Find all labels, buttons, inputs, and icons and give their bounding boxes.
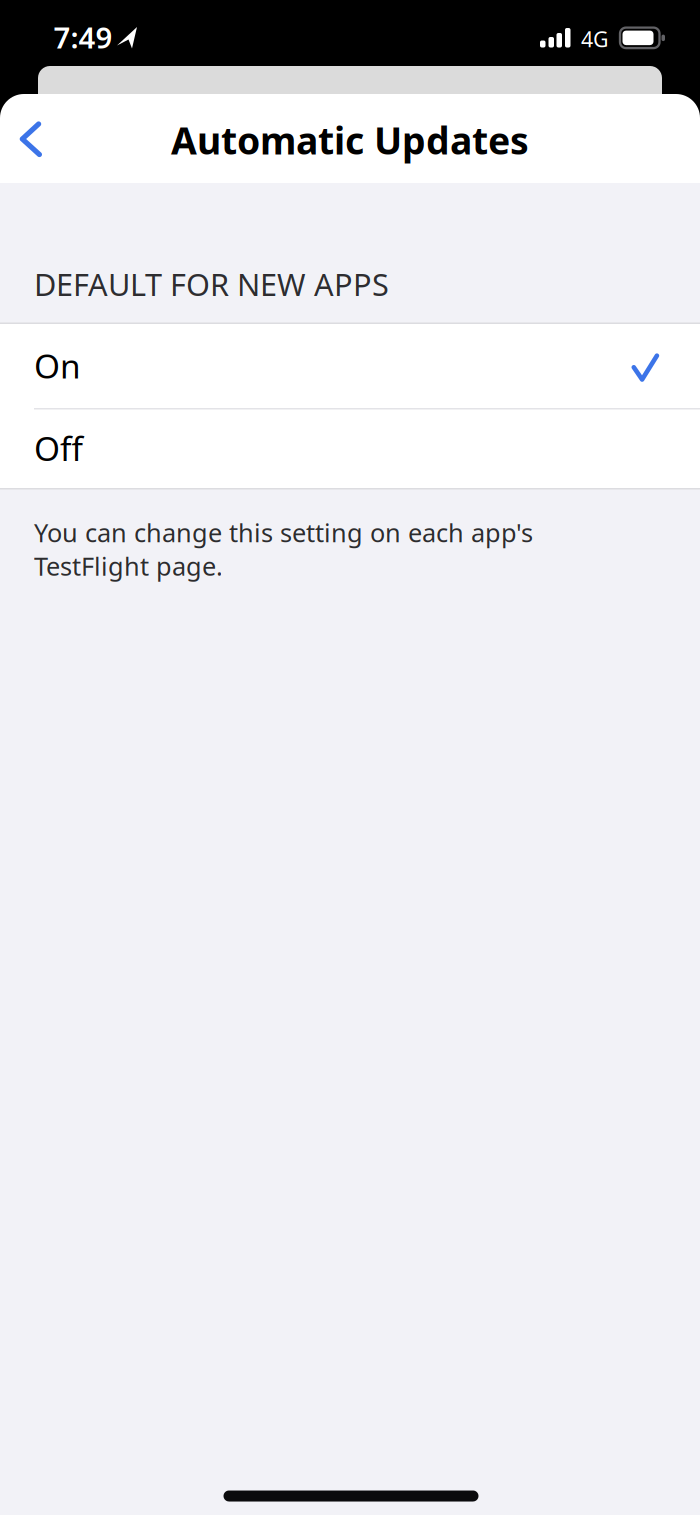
button[interactable]: Back bbox=[8, 107, 68, 171]
staticText: 4G bbox=[581, 25, 609, 53]
staticText: Automatic Updates bbox=[171, 115, 529, 165]
button[interactable]: On bbox=[0, 323, 700, 408]
staticText: Off bbox=[34, 426, 83, 470]
button[interactable]: Off bbox=[0, 408, 700, 488]
staticText: On bbox=[34, 343, 81, 388]
staticText: TestFlight page. bbox=[34, 549, 223, 583]
staticText: DEFAULT FOR NEW APPS bbox=[34, 264, 389, 304]
staticText: You can change this setting on each app'… bbox=[34, 516, 533, 549]
staticText: 7:49 bbox=[53, 17, 112, 56]
